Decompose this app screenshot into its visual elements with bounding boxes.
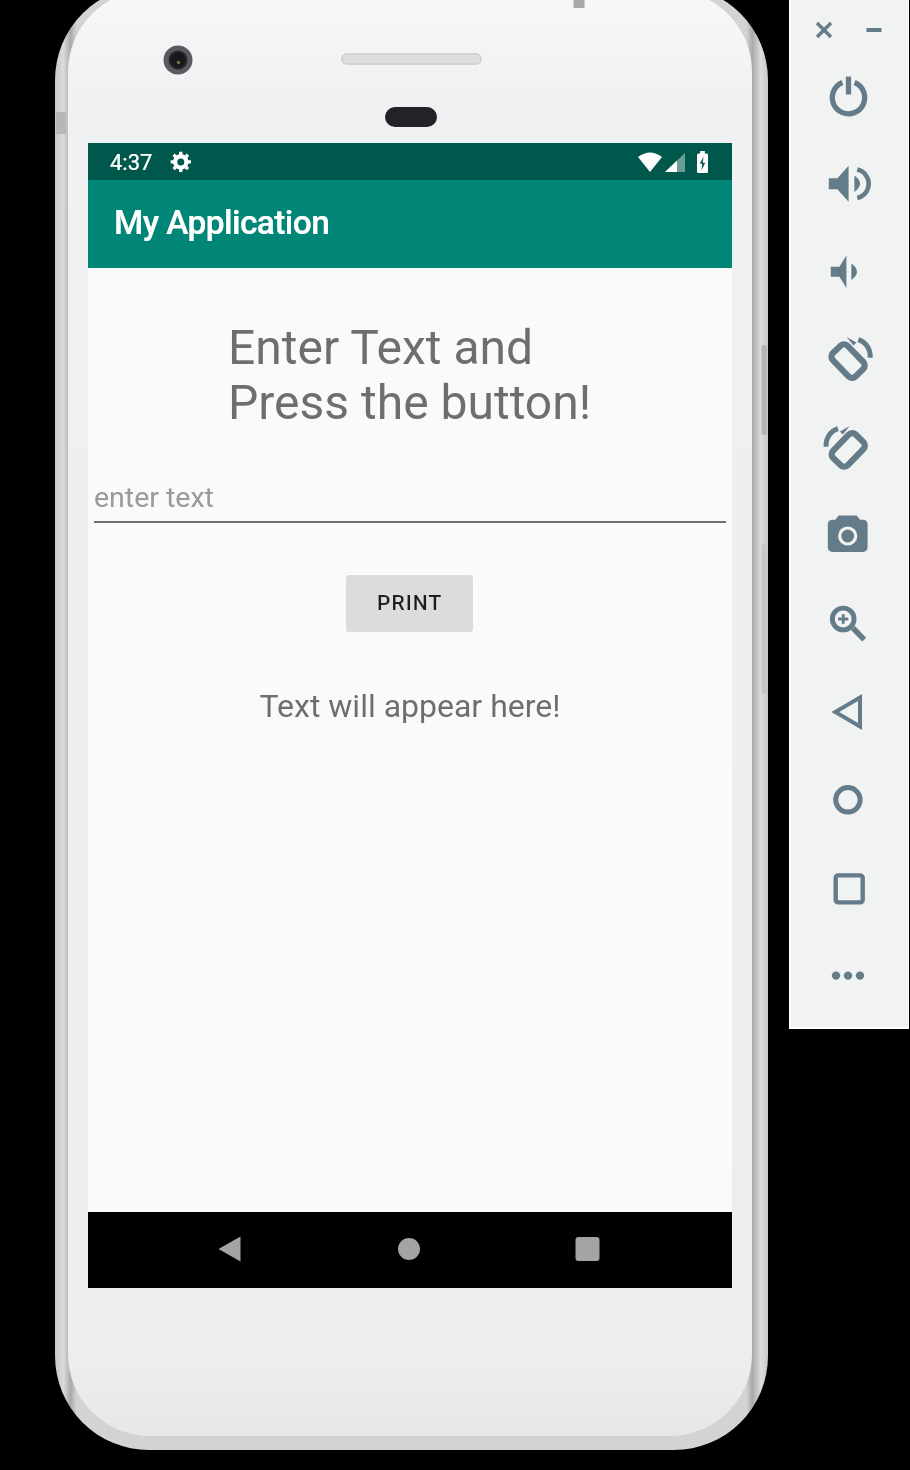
button[interactable]: Rotate left [819, 322, 876, 378]
button[interactable]: Recent apps [545, 1212, 629, 1288]
button[interactable]: Volume up [819, 154, 876, 210]
staticText: 4:37 [110, 150, 153, 176]
button[interactable]: Close [806, 12, 842, 48]
staticText: enter text [94, 481, 214, 514]
button[interactable]: Rotate right [819, 404, 876, 460]
button[interactable]: More [819, 936, 876, 992]
button[interactable]: Volume down [819, 241, 876, 297]
button[interactable]: Overview [819, 852, 876, 908]
staticText: Enter Text and Press the button! [228, 319, 592, 430]
staticText: My Application [114, 203, 330, 242]
button[interactable]: Zoom [819, 596, 876, 652]
button[interactable]: Home [819, 771, 876, 827]
staticText: Text will appear here! [88, 687, 732, 725]
button[interactable]: Home [367, 1212, 451, 1288]
button[interactable]: Back [819, 683, 876, 739]
button[interactable]: enter text [94, 481, 726, 514]
button[interactable]: PRINT [346, 575, 473, 632]
staticText: PRINT [377, 591, 443, 616]
button[interactable]: Take screenshot [819, 506, 876, 562]
button[interactable]: Power [819, 67, 876, 123]
button[interactable]: Minimize [856, 12, 892, 48]
button[interactable]: Back [188, 1212, 272, 1288]
